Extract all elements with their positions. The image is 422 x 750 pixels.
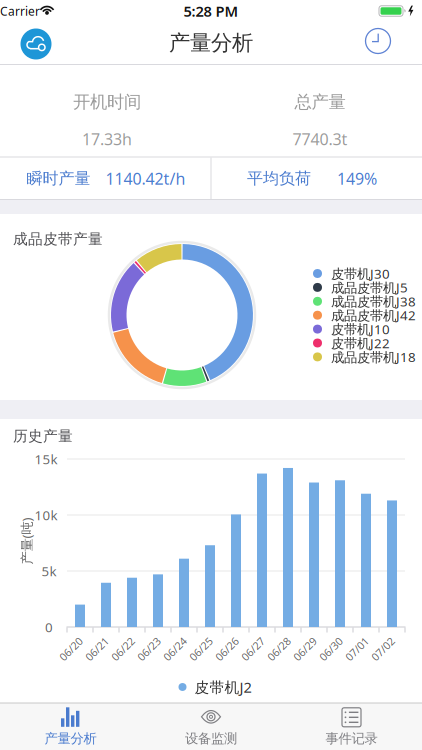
staticText: 5k <box>41 562 56 580</box>
staticText: 产量(吨) <box>3 532 50 550</box>
staticText: 06/30 <box>317 642 345 656</box>
staticText: 07/01 <box>343 642 371 656</box>
staticText: 06/27 <box>239 642 267 656</box>
button[interactable]: 皮带机J2 <box>178 677 251 697</box>
staticText: Carrier <box>0 3 40 19</box>
staticText: 瞬时产量 <box>26 169 90 188</box>
staticText: 06/22 <box>109 642 137 656</box>
staticText: 06/21 <box>83 642 111 656</box>
staticText: 设备监测 <box>185 730 237 747</box>
staticText: 06/24 <box>161 642 189 656</box>
staticText: 06/25 <box>187 642 215 656</box>
button[interactable]: 皮带机J22 <box>313 336 422 349</box>
staticText: 149% <box>337 168 377 189</box>
staticText: 开机时间 <box>73 91 141 113</box>
button[interactable]: 成品皮带机J5 <box>313 281 422 294</box>
staticText: 06/29 <box>291 642 319 656</box>
staticText: 产量分析 <box>169 30 253 56</box>
staticText: 产量分析 <box>44 730 96 747</box>
staticText: 06/26 <box>213 642 241 656</box>
button[interactable]: 皮带机J30 <box>313 267 422 280</box>
button[interactable]: 成品皮带机J38 <box>313 295 422 308</box>
staticText: 皮带机J2 <box>194 677 251 697</box>
button[interactable] <box>365 28 391 54</box>
staticText: 06/28 <box>265 642 293 656</box>
staticText: 10k <box>34 506 57 524</box>
staticText: 17.33h <box>82 128 132 150</box>
staticText: 07/02 <box>369 642 397 656</box>
staticText: 5:28 PM <box>183 1 238 21</box>
button[interactable]: 成品皮带机J18 <box>313 350 422 363</box>
button[interactable] <box>20 28 52 60</box>
staticText: 0 <box>45 618 53 636</box>
staticText: 06/23 <box>135 642 163 656</box>
button[interactable]: 事件记录 <box>281 704 421 750</box>
staticText: 皮带机J22 <box>331 334 390 352</box>
button[interactable]: 瞬时产量 <box>2 157 210 199</box>
button[interactable]: 成品皮带机J42 <box>313 309 422 322</box>
staticText: 历史产量 <box>13 427 73 445</box>
staticText: 15k <box>34 450 57 468</box>
staticText: 成品皮带机J5 <box>331 278 408 296</box>
staticText: 平均负荷 <box>247 169 311 188</box>
staticText: 总产量 <box>294 91 345 113</box>
staticText: 1140.42t/h <box>105 168 185 189</box>
staticText: 皮带机J30 <box>331 265 390 282</box>
button[interactable]: 皮带机J10 <box>313 323 422 336</box>
staticText: 成品皮带机J18 <box>331 348 416 366</box>
staticText: 成品皮带机J42 <box>331 306 416 324</box>
staticText: 成品皮带机J38 <box>331 292 416 310</box>
button[interactable]: 产量分析 <box>0 704 140 750</box>
button[interactable]: 平均负荷 <box>208 157 416 199</box>
staticText: 成品皮带产量 <box>13 230 103 248</box>
staticText: 事件记录 <box>325 730 377 747</box>
button[interactable]: 设备监测 <box>141 704 281 750</box>
staticText: 06/20 <box>57 642 85 656</box>
staticText: 7740.3t <box>292 128 347 150</box>
staticText: 皮带机J10 <box>331 320 390 338</box>
